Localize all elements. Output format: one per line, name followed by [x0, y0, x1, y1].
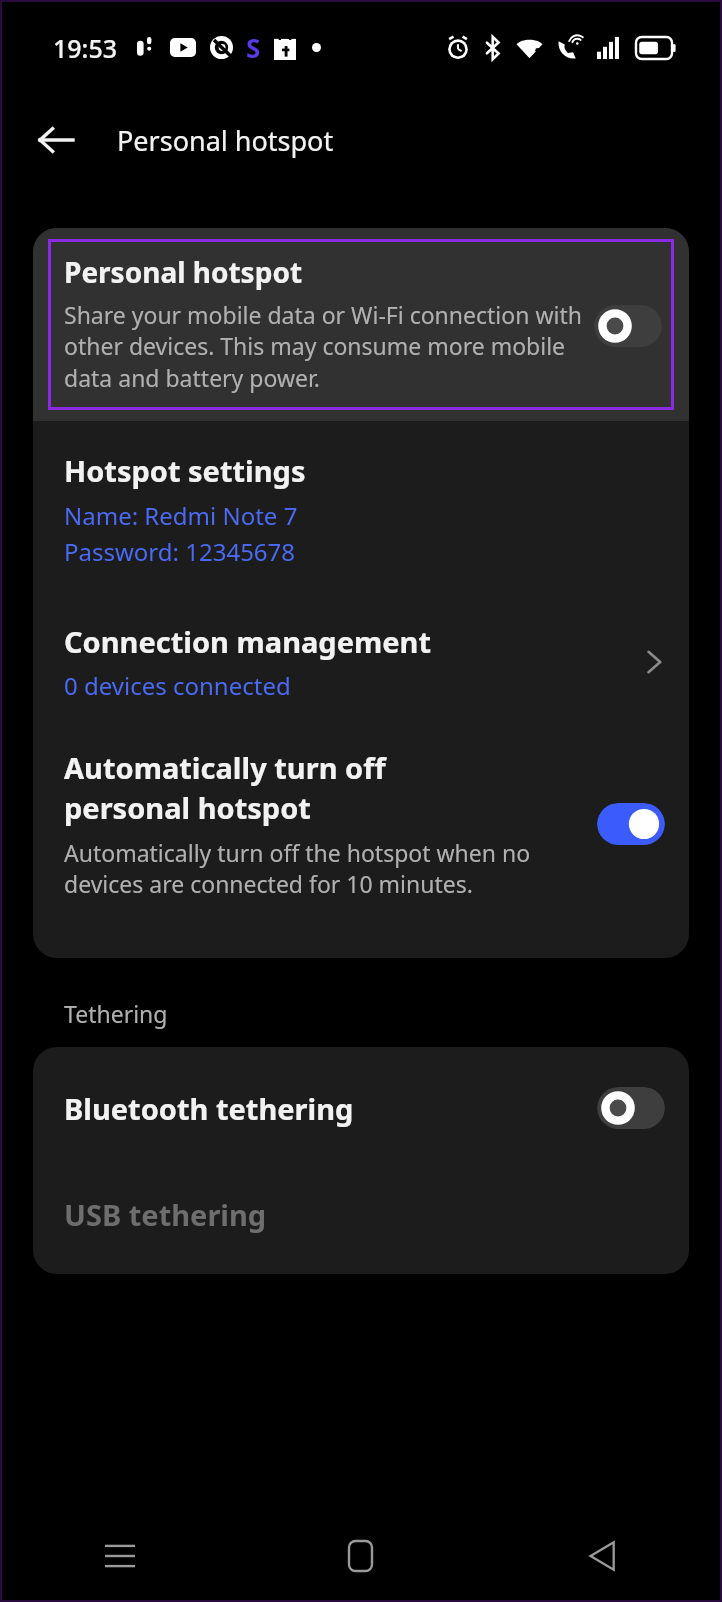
staticText: Automatically turn off the hotspot when …: [64, 837, 589, 900]
button[interactable]: Connection management: [33, 622, 689, 702]
staticText: Personal hotspot: [64, 253, 303, 291]
staticText: Name: Redmi Note 7: [64, 499, 298, 532]
button[interactable]: Home: [240, 1510, 481, 1602]
button[interactable]: Back: [28, 112, 84, 168]
staticText: Automatically turn off personal hotspot: [64, 748, 386, 828]
staticText: Share your mobile data or Wi-Fi connecti…: [64, 299, 588, 394]
staticText: Personal hotspot: [117, 122, 334, 159]
button[interactable]: Recents: [0, 1510, 240, 1602]
staticText: 0 devices connected: [64, 669, 291, 702]
staticText: 19:53: [53, 31, 118, 65]
button[interactable]: Bluetooth tethering: [33, 1047, 689, 1147]
button[interactable]: Hotspot settings: [33, 421, 689, 574]
button[interactable]: Toggle on: [597, 803, 665, 845]
staticText: Bluetooth tethering: [64, 1089, 597, 1128]
button[interactable]: Toggle off: [597, 1087, 665, 1129]
staticText: Connection management: [64, 622, 432, 661]
button[interactable]: Toggle off: [594, 305, 662, 347]
button[interactable]: Back: [481, 1510, 722, 1602]
staticText: USB tethering: [64, 1195, 665, 1234]
staticText: S: [246, 30, 261, 65]
staticText: Tethering: [64, 998, 168, 1029]
staticText: Password: 12345678: [64, 535, 296, 568]
staticText: Hotspot settings: [64, 451, 306, 490]
button[interactable]: Personal hotspot: [33, 228, 689, 421]
button[interactable]: Automatically turn off personal hotspot: [33, 748, 689, 900]
button[interactable]: USB tethering: [33, 1147, 689, 1274]
